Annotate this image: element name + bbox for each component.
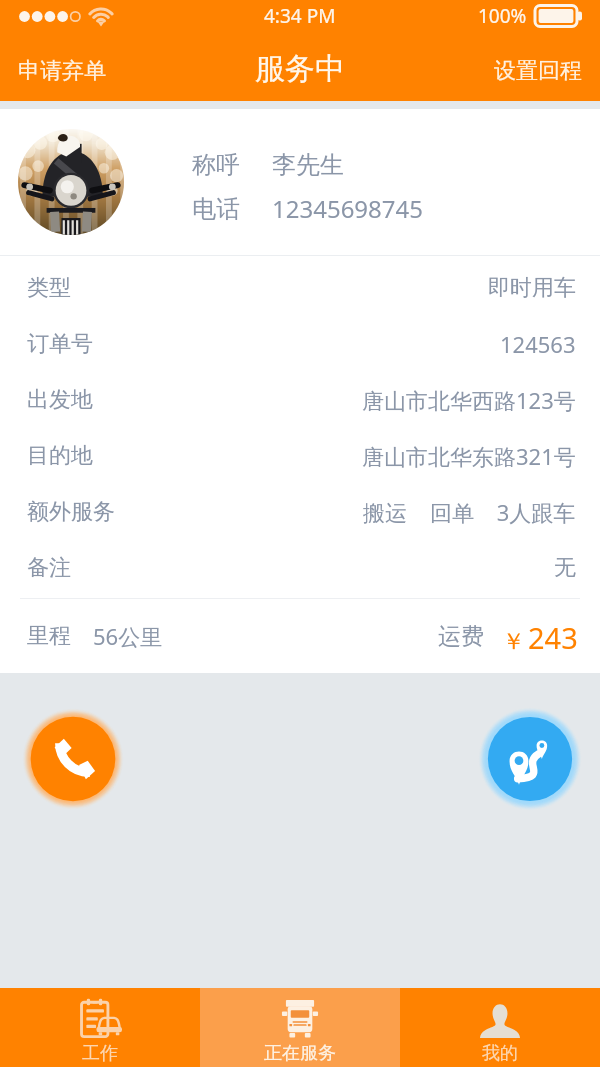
button[interactable]: 我的 [400,988,600,1067]
staticText: 设置回程 [494,57,582,85]
staticText: 12345698745 [272,192,424,225]
staticText: 备注 [27,554,71,582]
staticText: 无 [554,554,576,582]
staticText: 我的 [482,1042,518,1065]
staticText: 额外服务 [27,498,115,526]
staticText: 4:34 PM [264,3,336,29]
staticText: 运费 [438,622,484,651]
staticText: 申请弃单 [18,57,106,85]
button[interactable]: 正在服务 [200,988,400,1067]
staticText: 出发地 [27,386,93,414]
button[interactable]: View route [478,707,582,811]
button[interactable]: 设置回程 [480,36,600,101]
staticText: 订单号 [27,330,93,358]
staticText: 唐山市北华东路321号 [362,441,576,471]
staticText: 工作 [82,1042,118,1065]
staticText: 类型 [27,274,71,302]
button[interactable]: 申请弃单 [0,36,120,101]
staticText: 正在服务 [264,1042,336,1065]
staticText: 100% [478,3,527,29]
staticText: 124563 [500,329,576,359]
staticText: ￥ [502,627,525,656]
staticText: 唐山市北华西路123号 [362,385,576,415]
staticText: 里程 [27,622,71,650]
staticText: 电话 [192,194,240,224]
button[interactable]: Call driver [22,708,124,810]
staticText: 李先生 [272,150,344,180]
staticText: 即时用车 [488,274,576,302]
staticText: 243 [528,618,578,657]
staticText: 搬运 回单 3人跟车 [363,497,576,527]
staticText: 称呼 [192,150,240,180]
staticText: 56公里 [93,621,163,651]
button[interactable]: 工作 [0,988,200,1067]
staticText: 目的地 [27,442,93,470]
staticText: 服务中 [255,50,345,88]
